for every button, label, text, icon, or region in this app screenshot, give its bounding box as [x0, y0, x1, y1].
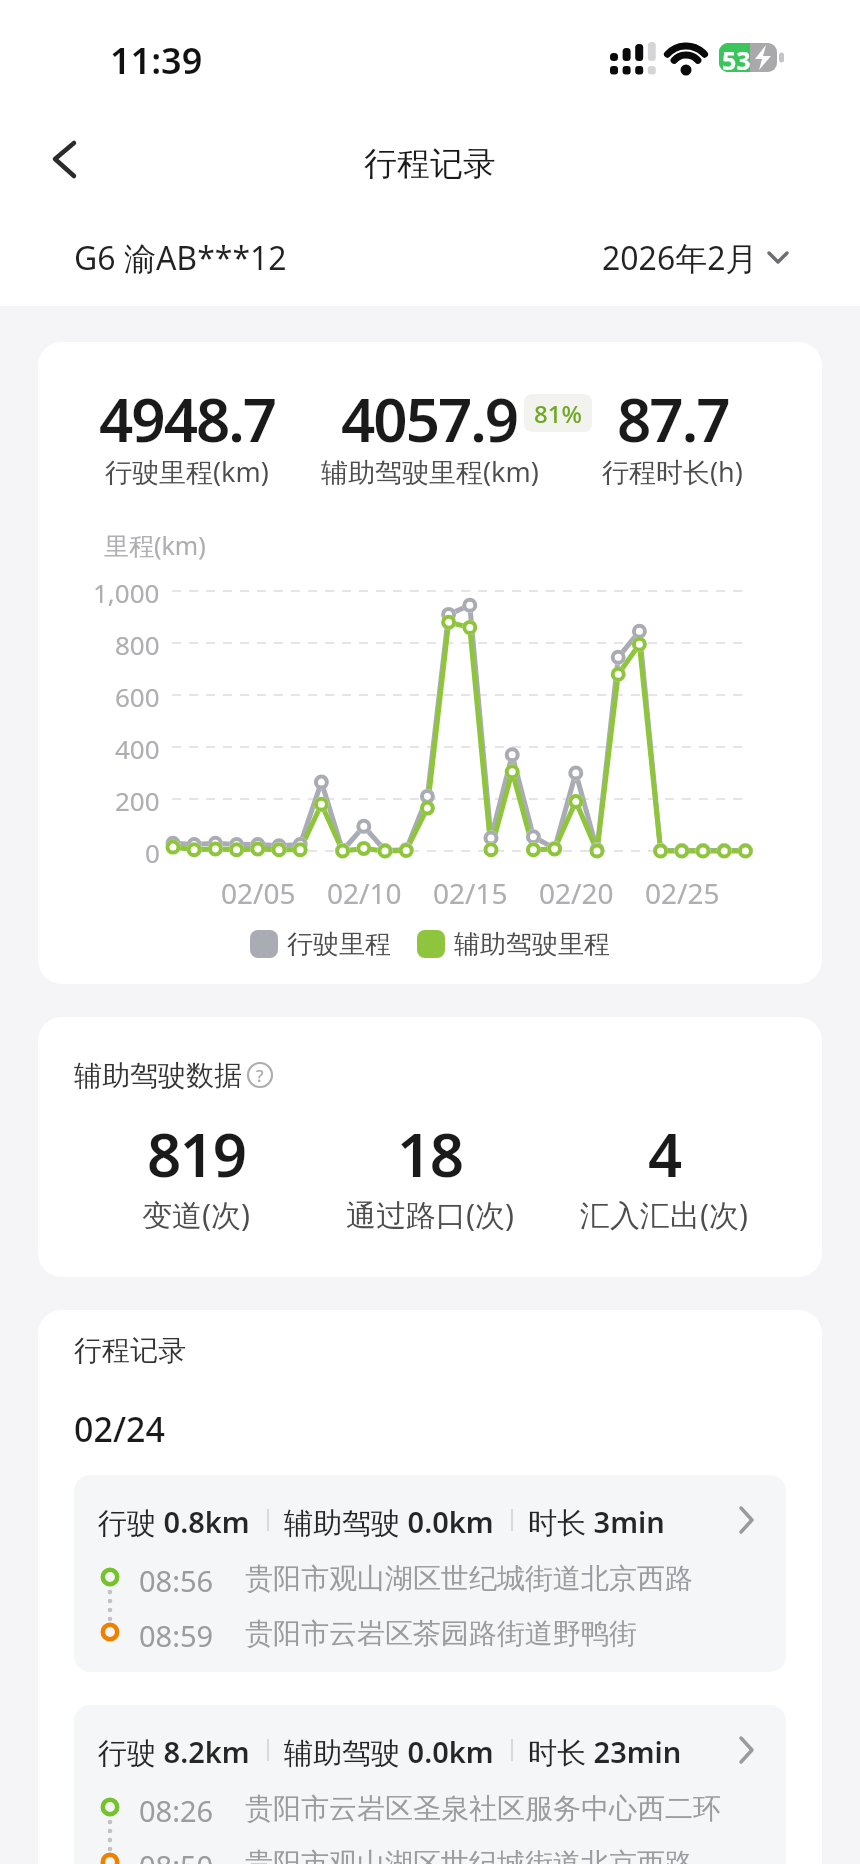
staticText: 贵阳市观山湖区世纪城街道北京西路 — [245, 1561, 693, 1593]
staticText: 行程记录 — [74, 1333, 186, 1368]
staticText: 02/10 — [327, 874, 402, 906]
staticText: 02/15 — [433, 874, 508, 906]
staticText: 辅助驾驶里程 — [454, 928, 610, 960]
staticText: 时长 23min — [528, 1732, 682, 1768]
staticText: 87.7 — [617, 378, 729, 450]
button[interactable] — [40, 132, 90, 188]
staticText: 08:26 — [139, 1791, 214, 1823]
staticText: 08:56 — [139, 1561, 214, 1593]
staticText: 02/20 — [539, 874, 614, 906]
staticText: 1,000 — [93, 575, 160, 607]
staticText: 辅助驾驶 0.0km — [284, 1502, 494, 1538]
staticText: ? — [256, 1064, 264, 1087]
staticText: 200 — [115, 783, 160, 815]
staticText: 辅助驾驶里程(km) — [321, 453, 539, 489]
staticText: 08:50 — [139, 1846, 214, 1864]
staticText: 53 — [722, 43, 751, 72]
staticText: 贵阳市云岩区茶园路街道野鸭街 — [245, 1616, 637, 1648]
staticText: 02/24 — [74, 1406, 165, 1450]
button[interactable]: ? — [246, 1061, 274, 1089]
staticText: 18 — [397, 1113, 463, 1183]
staticText: 通过路口(次) — [346, 1194, 514, 1232]
staticText: 4948.7 — [99, 378, 276, 450]
staticText: 0 — [145, 835, 160, 867]
staticText: 11:39 — [110, 36, 203, 80]
staticText: 行程记录 — [364, 143, 496, 185]
staticText: 4057.9 — [341, 378, 518, 450]
staticText: 行程时长(h) — [602, 453, 743, 489]
staticText: 贵阳市云岩区圣泉社区服务中心西二环 — [245, 1791, 721, 1823]
staticText: 辅助驾驶 0.0km — [284, 1732, 494, 1768]
staticText: 时长 3min — [528, 1502, 665, 1538]
button[interactable]: 行驶 8.2km — [74, 1705, 786, 1864]
staticText: 里程(km) — [104, 528, 206, 562]
staticText: 2026年2月 — [602, 236, 758, 278]
staticText: 819 — [147, 1113, 246, 1183]
staticText: 800 — [115, 627, 160, 659]
staticText: 辅助驾驶数据 — [74, 1058, 242, 1093]
button[interactable]: 2026年2月 — [560, 236, 790, 278]
staticText: 4 — [648, 1113, 681, 1183]
staticText: 行驶 0.8km — [98, 1502, 250, 1538]
staticText: 02/05 — [221, 874, 296, 906]
staticText: 行驶 8.2km — [98, 1732, 250, 1768]
staticText: 400 — [115, 731, 160, 763]
staticText: G6 渝AB***12 — [74, 236, 287, 278]
staticText: 汇入汇出(次) — [580, 1194, 748, 1232]
staticText: 行驶里程 — [287, 928, 391, 960]
staticText: 变道(次) — [142, 1194, 250, 1232]
staticText: 08:59 — [139, 1616, 214, 1648]
staticText: 600 — [115, 679, 160, 711]
staticText: 02/25 — [645, 874, 720, 906]
staticText: 贵阳市观山湖区世纪城街道北京西路 — [245, 1846, 693, 1864]
staticText: 81% — [534, 397, 582, 430]
staticText: 行驶里程(km) — [105, 453, 269, 489]
button[interactable]: 行驶 0.8km — [74, 1475, 786, 1672]
